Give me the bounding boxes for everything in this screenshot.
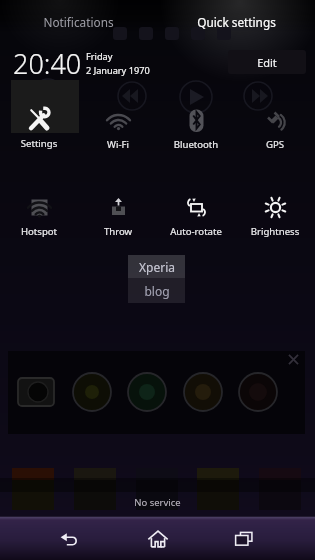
- staticText: Quick settings: [197, 14, 276, 30]
- staticText: Xperia: [139, 259, 175, 275]
- staticText: Wi-Fi: [79, 138, 157, 151]
- button[interactable]: Edit: [228, 50, 306, 74]
- staticText: Brightness: [236, 225, 314, 238]
- button[interactable]: Home: [119, 518, 197, 560]
- staticText: Edit: [257, 55, 277, 70]
- staticText: Auto-rotate: [157, 225, 235, 238]
- button[interactable]: Throw: [79, 188, 157, 234]
- other: Close: [287, 353, 300, 366]
- staticText: blog: [144, 283, 170, 299]
- staticText: No service: [0, 496, 315, 509]
- button[interactable]: Recent apps: [205, 518, 283, 560]
- staticText: GPS: [236, 138, 314, 151]
- button[interactable]: Notifications: [0, 10, 157, 34]
- button[interactable]: Settings: [0, 100, 78, 146]
- button[interactable]: Back: [30, 518, 108, 560]
- button[interactable]: Quick settings: [158, 10, 315, 34]
- button[interactable]: Auto-rotate: [157, 188, 235, 234]
- staticText: Hotspot: [0, 225, 78, 238]
- staticText: Throw: [79, 225, 157, 238]
- staticText: 2 January 1970: [86, 64, 150, 77]
- staticText: Bluetooth: [157, 138, 235, 151]
- button[interactable]: Bluetooth: [157, 101, 235, 147]
- staticText: Settings: [0, 137, 78, 150]
- staticText: Friday: [86, 50, 113, 63]
- button[interactable]: Hotspot: [0, 188, 78, 234]
- button[interactable]: Wi-Fi: [79, 101, 157, 147]
- staticText: 20:40: [13, 45, 82, 82]
- button[interactable]: Brightness: [236, 188, 314, 234]
- staticText: Notifications: [43, 14, 114, 30]
- button[interactable]: GPS: [236, 101, 314, 147]
